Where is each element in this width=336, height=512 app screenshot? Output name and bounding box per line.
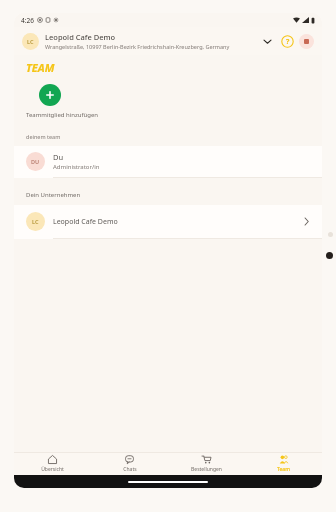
staticText: Administrator/in bbox=[53, 163, 100, 171]
staticText: Du bbox=[53, 152, 64, 162]
button[interactable]: Chats bbox=[91, 453, 168, 475]
staticText: LC bbox=[27, 38, 34, 45]
staticText: Bestellungen bbox=[191, 466, 222, 473]
staticText: Chats bbox=[123, 466, 137, 473]
button[interactable]: Teammitglied hinzufügen bbox=[26, 84, 99, 119]
staticText: Dein Unternehmen bbox=[26, 191, 81, 199]
staticText: ? bbox=[286, 37, 290, 47]
staticText: Leopold Cafe Demo bbox=[53, 217, 303, 227]
button[interactable]: Bestellungen bbox=[168, 453, 245, 475]
button[interactable]: DU bbox=[14, 146, 322, 177]
staticText: 4:26 bbox=[21, 16, 34, 25]
button[interactable]: LC bbox=[14, 205, 322, 238]
staticText: DU bbox=[31, 158, 40, 165]
button[interactable]: Benachrichtigungen bbox=[299, 34, 314, 49]
staticText: Team bbox=[277, 466, 290, 473]
staticText: Wrangelstraße, 10997 Berlin-Bezirk Fried… bbox=[45, 43, 230, 50]
staticText: Leopold Cafe Demo bbox=[45, 32, 116, 42]
button[interactable]: Standort wechseln bbox=[260, 34, 274, 48]
button[interactable]: Team bbox=[245, 453, 322, 475]
staticText: Teammitglied hinzufügen bbox=[26, 111, 99, 119]
button[interactable]: Hilfe bbox=[280, 34, 295, 49]
button[interactable]: Übersicht bbox=[14, 453, 91, 475]
staticText: Übersicht bbox=[41, 466, 64, 473]
staticText: LC bbox=[32, 218, 39, 225]
staticText: TEAM bbox=[26, 60, 55, 75]
staticText: deinem team bbox=[26, 133, 61, 140]
